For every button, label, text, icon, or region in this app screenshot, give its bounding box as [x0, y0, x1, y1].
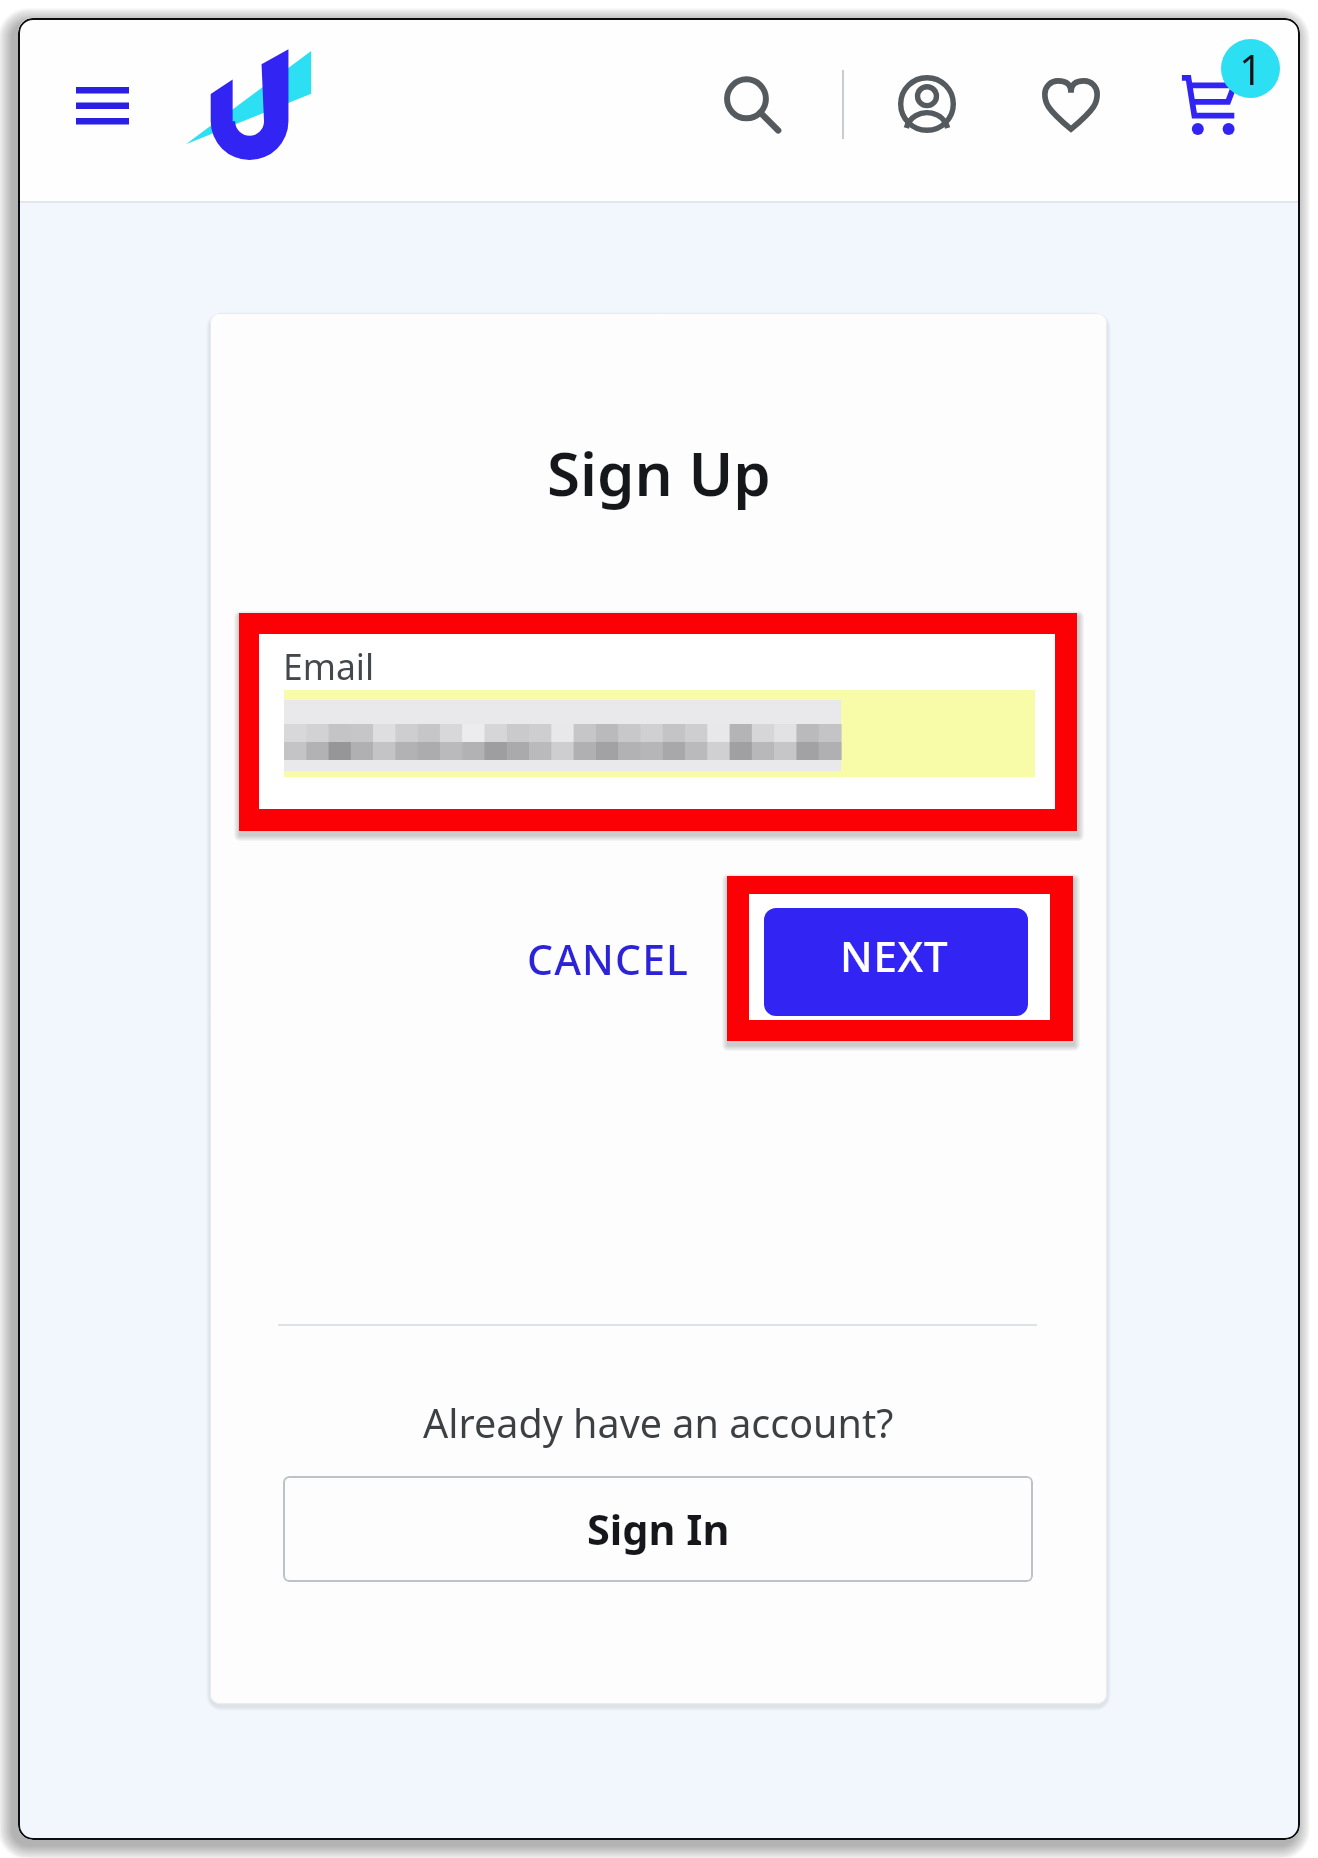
staticText: CANCEL [527, 931, 690, 987]
button[interactable]: Cart, 1 item [1158, 38, 1288, 168]
button[interactable]: Wishlist [1018, 56, 1124, 158]
button[interactable]: Search [706, 60, 808, 160]
staticText: NEXT [840, 927, 949, 984]
button[interactable]: Account [873, 56, 981, 158]
staticText: Sign Up [547, 432, 771, 514]
staticText: 1 [1239, 41, 1263, 97]
button[interactable]: Sign In [283, 1476, 1033, 1582]
staticText: Email [283, 642, 375, 690]
button[interactable]: NEXT [764, 908, 1028, 1016]
staticText: Already have an account? [423, 1396, 894, 1450]
button[interactable]: Menu [52, 58, 152, 154]
button[interactable]: CANCEL [507, 908, 709, 1010]
staticText: Sign In [587, 1501, 730, 1558]
button[interactable]: Email [259, 634, 1055, 809]
